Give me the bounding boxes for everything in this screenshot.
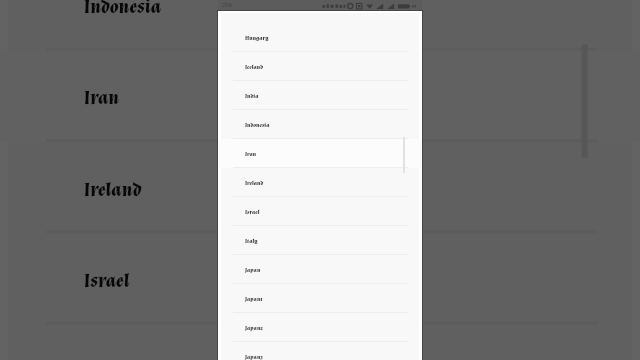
button[interactable]: Italy xyxy=(0,325,640,360)
staticText: Iran xyxy=(84,85,121,111)
staticText: India xyxy=(245,92,259,100)
other: Status indicators xyxy=(318,2,422,10)
staticText: Italy xyxy=(245,237,258,245)
staticText: Japan3 xyxy=(245,353,263,360)
button[interactable]: India xyxy=(218,81,422,110)
button[interactable]: Japan xyxy=(218,255,422,284)
staticText: Indonesia xyxy=(245,121,270,129)
button[interactable]: Israel xyxy=(218,197,422,226)
staticText: Israel xyxy=(84,268,131,293)
button[interactable]: Japan1 xyxy=(218,284,422,313)
button[interactable]: Indonesia xyxy=(218,110,422,139)
staticText: 25% xyxy=(222,2,232,9)
staticText: Ireland xyxy=(84,177,144,202)
button[interactable]: Ireland xyxy=(0,142,640,234)
staticText: Hungary xyxy=(245,34,269,42)
button[interactable]: Indonesia xyxy=(0,0,640,51)
button[interactable]: Iran xyxy=(218,139,422,168)
button[interactable]: Iceland xyxy=(218,52,422,81)
button[interactable]: Iran xyxy=(0,51,640,142)
staticText: Indonesia xyxy=(84,0,162,19)
button[interactable]: Ireland xyxy=(218,168,422,197)
button[interactable]: Japan3 xyxy=(218,342,422,360)
staticText: Japan xyxy=(245,266,261,274)
button[interactable]: Hungary xyxy=(218,23,422,52)
staticText: Iceland xyxy=(245,63,264,71)
button[interactable]: Italy xyxy=(218,226,422,255)
staticText: Japan1 xyxy=(245,295,263,303)
button[interactable]: Israel xyxy=(0,234,640,325)
button[interactable]: Japan2 xyxy=(218,313,422,342)
staticText: Israel xyxy=(245,208,260,216)
staticText: Japan2 xyxy=(245,324,263,332)
staticText: Iran xyxy=(245,150,257,158)
staticText: Ireland xyxy=(245,179,264,187)
